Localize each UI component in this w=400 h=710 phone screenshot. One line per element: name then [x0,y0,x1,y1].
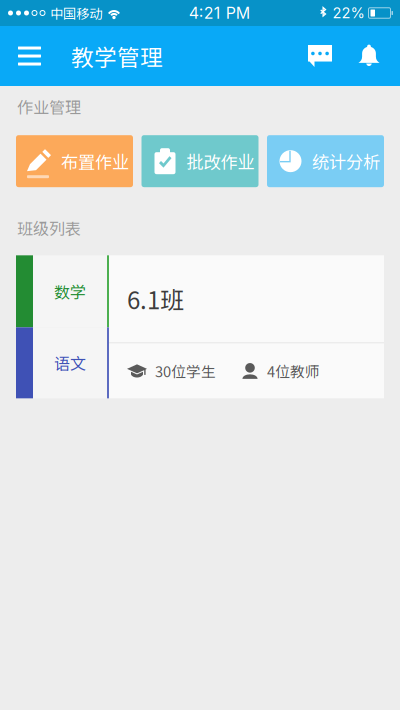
staticText: 中国移动 [50,3,102,23]
staticText: 30位学生 [155,360,216,381]
button[interactable]: 批改作业 [141,135,258,187]
staticText: 6.1班 [127,281,184,316]
button[interactable]: Menu [9,26,50,86]
button[interactable]: 数学 [16,255,384,398]
staticText: 4位教师 [267,360,320,381]
staticText: 教学管理 [71,40,163,72]
staticText: 布置作业 [61,149,129,174]
staticText: 语文 [54,351,86,374]
staticText: 作业管理 [17,95,81,118]
button[interactable]: Messages [295,26,345,86]
staticText: 22% [332,4,364,22]
button[interactable]: Notifications [345,26,393,86]
staticText: 批改作业 [186,149,254,174]
staticText: 统计分析 [312,149,380,174]
staticText: 数学 [54,280,86,303]
staticText: 4:21 PM [189,3,250,23]
button[interactable]: 布置作业 [16,135,133,187]
staticText: 班级列表 [17,216,81,239]
button[interactable]: 统计分析 [267,135,384,187]
